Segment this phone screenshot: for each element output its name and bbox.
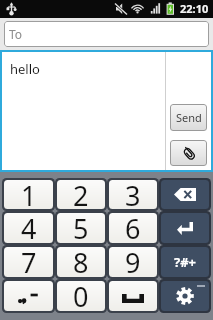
button[interactable]: 0 [57, 281, 105, 311]
staticText: 6 [125, 213, 141, 240]
staticText: 7 [21, 247, 37, 274]
button[interactable]: To [4, 21, 209, 47]
staticText: 1 [21, 180, 37, 206]
button[interactable]: 6 [109, 213, 157, 243]
staticText: Send [176, 110, 202, 125]
button[interactable]: Enter [161, 213, 209, 243]
staticText: 22:10 [180, 1, 209, 16]
button[interactable]: Settings [161, 281, 209, 311]
button[interactable]: 7 [4, 247, 53, 277]
button[interactable]: 8 [57, 247, 105, 277]
staticText: 8 [73, 247, 89, 274]
staticText: 0 [73, 281, 89, 308]
button[interactable] [4, 281, 53, 311]
other: Settings [161, 281, 209, 311]
button[interactable]: 9 [109, 247, 157, 277]
button[interactable] [109, 281, 157, 311]
other: Enter [177, 222, 193, 235]
button[interactable]: Attach [170, 140, 207, 166]
button[interactable]: 3 [109, 180, 157, 209]
staticText: hello [10, 60, 40, 78]
staticText: To [9, 26, 23, 42]
staticText: 4 [21, 213, 37, 240]
button[interactable]: Send [170, 104, 207, 131]
button[interactable]: ?#+ [161, 247, 209, 277]
staticText: 3 [125, 180, 141, 206]
button[interactable]: 4 [4, 213, 53, 243]
button[interactable]: 1 [4, 180, 53, 209]
staticText: 5 [73, 213, 89, 240]
staticText: ?#+ [174, 253, 197, 271]
staticText: 2 [73, 180, 89, 206]
button[interactable]: 2 [57, 180, 105, 209]
other: Backspace [174, 188, 196, 201]
button[interactable]: Backspace [161, 180, 209, 209]
staticText: 9 [125, 247, 141, 274]
button[interactable]: 5 [57, 213, 105, 243]
